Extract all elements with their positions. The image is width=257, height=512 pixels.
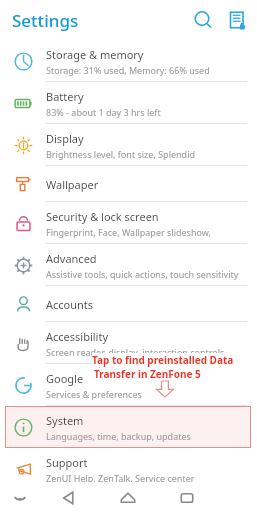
staticText: Settings: [12, 9, 79, 32]
staticText: 83% - about 1 day 3 hrs left: [46, 106, 161, 118]
button[interactable]: Wallpaper: [0, 166, 257, 202]
button[interactable]: Google: [0, 364, 257, 406]
button[interactable]: Search: [191, 8, 216, 33]
staticText: Services & preferences: [46, 388, 142, 400]
staticText: Screen reader, display, interaction cont…: [46, 346, 225, 358]
button[interactable]: Accessibility: [0, 322, 257, 364]
staticText: Display: [46, 131, 84, 146]
button[interactable]: System: [0, 406, 257, 448]
staticText: Fingerprint, Face, Wallpaper slideshow, …: [46, 226, 249, 238]
staticText: Advanced: [46, 251, 97, 266]
button[interactable]: Recents: [175, 486, 199, 510]
button[interactable]: Display: [0, 124, 257, 166]
button[interactable]: Battery: [0, 82, 257, 124]
button[interactable]: Home: [116, 486, 140, 510]
staticText: Wallpaper: [46, 177, 99, 192]
staticText: Storage & memory: [46, 47, 144, 62]
staticText: Accessibility: [46, 329, 109, 344]
button[interactable]: Security & lock screen: [0, 202, 257, 244]
staticText: Security & lock screen: [46, 209, 159, 224]
staticText: Battery: [46, 89, 84, 104]
staticText: Assistive tools, quick actions, touch se…: [46, 268, 239, 280]
staticText: Transfer in ZenFone 5: [94, 367, 201, 381]
staticText: Support: [46, 455, 88, 470]
staticText: Languages, time, backup, updates: [46, 430, 191, 442]
staticText: System: [46, 413, 84, 428]
button[interactable]: Support: [0, 448, 257, 490]
button[interactable]: Storage & memory: [0, 40, 257, 82]
staticText: Google: [46, 371, 84, 386]
staticText: ZenUI Help, ZenTalk, Service center: [46, 472, 195, 484]
button[interactable]: Back: [56, 486, 80, 510]
staticText: Accounts: [46, 297, 94, 312]
staticText: Tap to find preinstalled Data: [92, 353, 234, 367]
button[interactable]: Accounts: [0, 286, 257, 322]
staticText: Brightness level, font size, Splendid: [46, 148, 195, 160]
button[interactable]: Feedback: [225, 8, 250, 33]
button[interactable]: Advanced: [0, 244, 257, 286]
button[interactable]: Hide: [8, 486, 32, 510]
staticText: Storage: 31% used, Memory: 66% used: [46, 64, 210, 76]
